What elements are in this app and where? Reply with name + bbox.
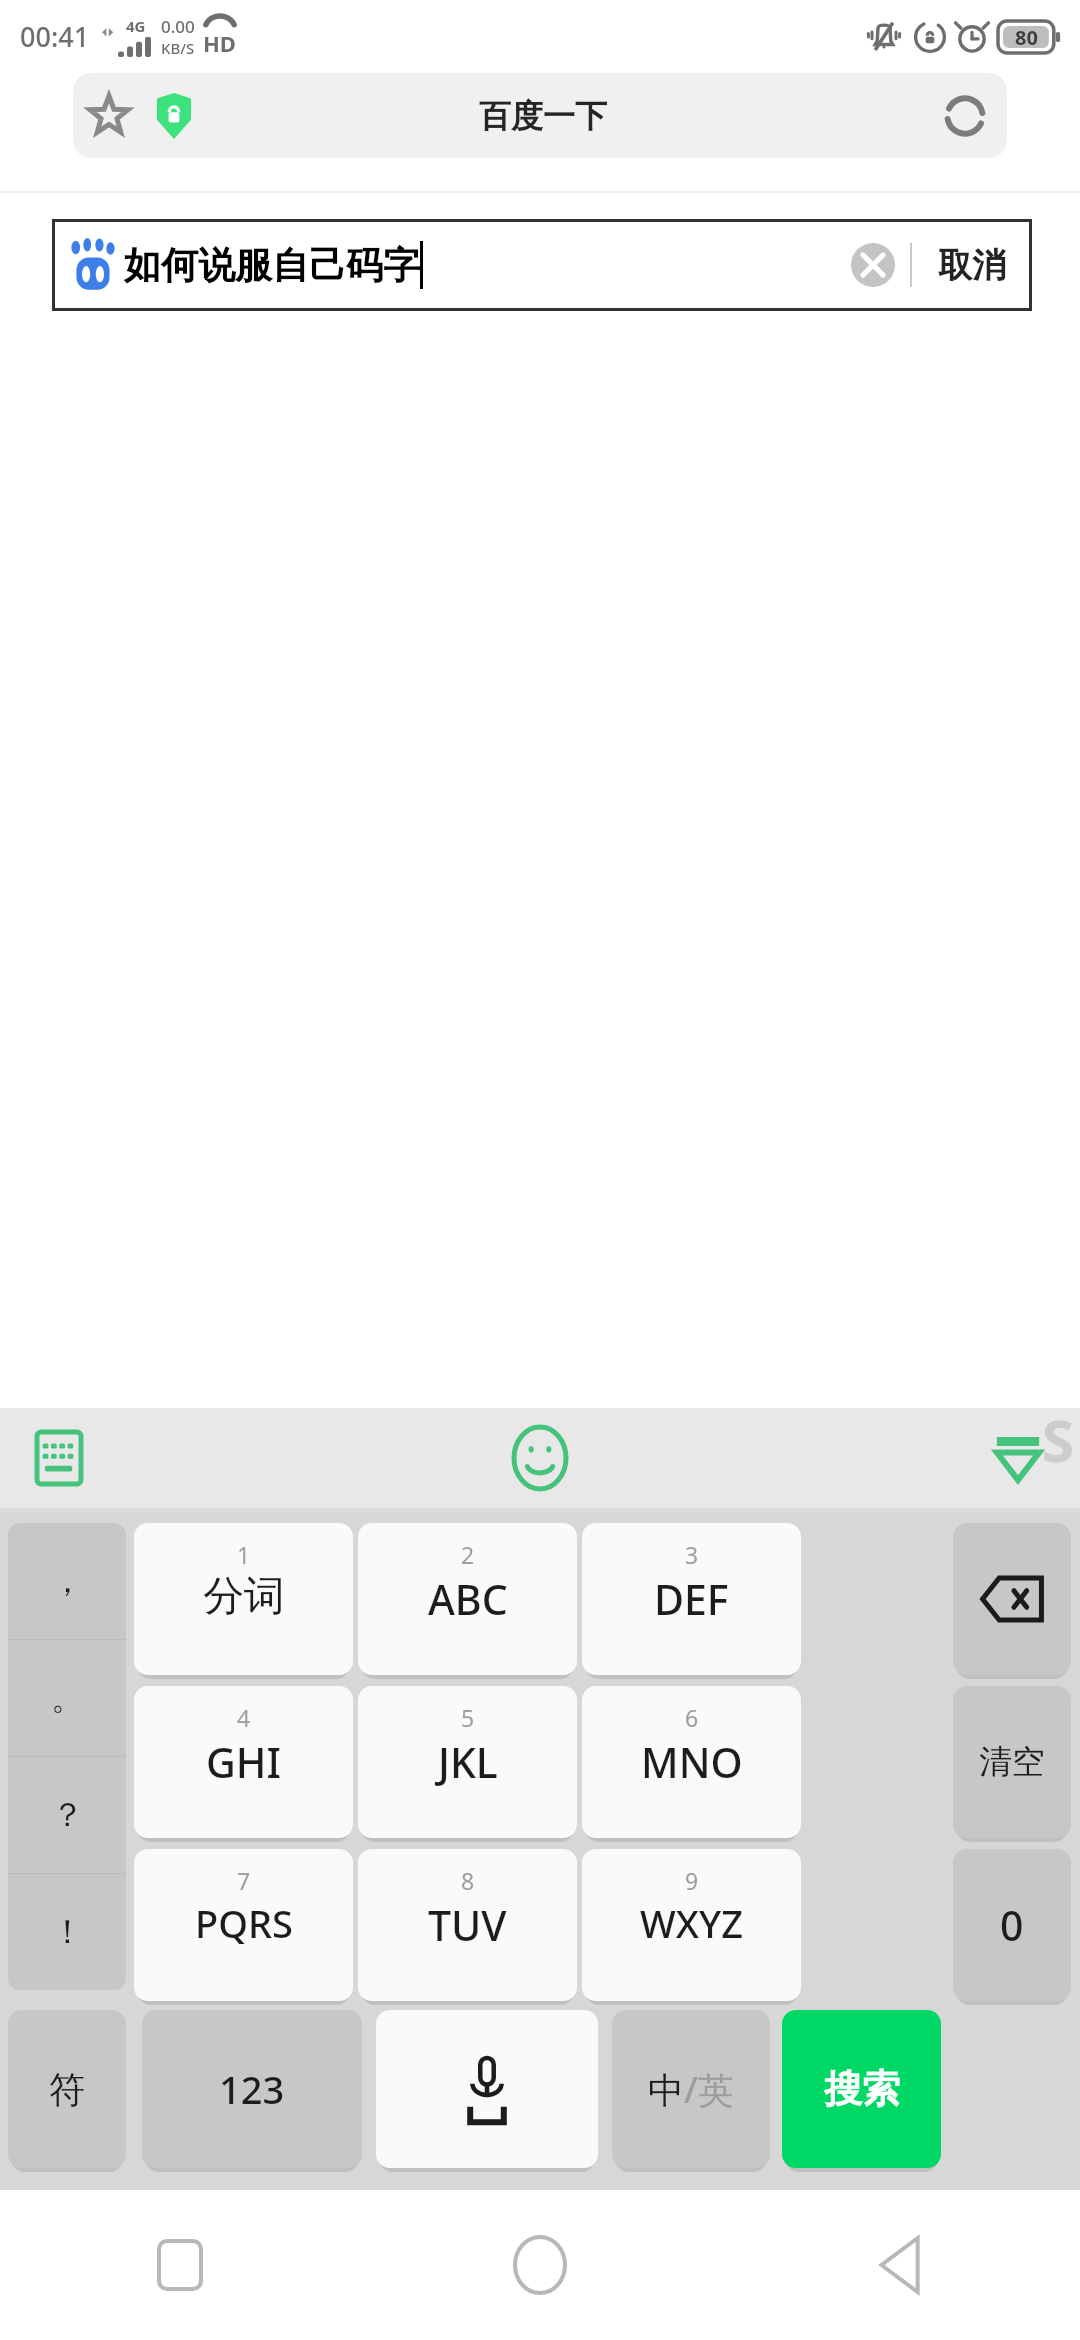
button[interactable]: Hide keyboard [982,1422,1054,1494]
staticText: JKL [438,1734,498,1790]
staticText: ？ [51,1794,84,1836]
button[interactable]: 1 [134,1523,353,1675]
staticText: MNO [641,1734,743,1790]
staticText: ABC [428,1571,508,1627]
button[interactable]: Back [720,2190,1080,2340]
button[interactable]: 清空 [953,1686,1071,1838]
button[interactable]: Home [360,2190,720,2340]
staticText: 符 [49,2067,85,2112]
staticText: 7 [237,1865,251,1896]
staticText: KB/S [161,38,195,58]
staticText: 4G [126,16,146,36]
staticText: 4 [237,1702,251,1733]
button[interactable]: Backspace [953,1523,1071,1675]
button[interactable]: 123 [142,2010,362,2168]
button[interactable]: Clear text [836,219,910,311]
button[interactable]: Voice input [376,2010,598,2168]
button[interactable]: 3 [582,1523,801,1675]
button[interactable]: Recents [0,2190,360,2340]
staticText: 0 [1000,1897,1024,1953]
staticText: HD [203,28,236,58]
button[interactable]: 8 [358,1849,577,2001]
button[interactable]: 符 [8,2010,126,2168]
button[interactable]: Refresh [923,73,1007,158]
staticText: 百度一下 [183,96,903,136]
staticText: PQRS [195,1897,293,1949]
staticText: DEF [654,1571,729,1627]
button[interactable]: 中/英 [612,2010,770,2168]
staticText: 。 [51,1677,84,1719]
button[interactable]: 取消 [912,219,1032,311]
staticText: 清空 [979,1741,1045,1783]
staticText: 8 [461,1865,475,1896]
button[interactable]: ， [8,1523,126,1639]
button[interactable]: Emoji [501,1419,579,1497]
staticText: TUV [428,1897,507,1953]
button[interactable]: 7 [134,1849,353,2001]
staticText: ！ [51,1911,84,1953]
button[interactable]: 9 [582,1849,801,2001]
button[interactable]: Switch keyboard [26,1425,92,1491]
staticText: 分词 [203,1571,285,1623]
staticText: 6 [685,1702,699,1733]
button[interactable]: ！ [8,1874,126,1990]
button[interactable]: 2 [358,1523,577,1675]
staticText: S [1042,1400,1074,1479]
button[interactable]: 0 [953,1849,1071,2001]
staticText: 搜索 [824,2065,900,2113]
staticText: ， [51,1560,84,1602]
staticText: WXYZ [640,1897,743,1949]
staticText: 0.00 [161,15,195,38]
staticText: 80 [1015,24,1038,51]
button[interactable]: ？ [8,1757,126,1873]
button[interactable]: 搜索 [782,2010,941,2168]
staticText: 00:41 [20,18,90,55]
button[interactable]: 4 [134,1686,353,1838]
staticText: 2 [461,1539,475,1570]
staticText: 中/英 [648,2065,734,2114]
button[interactable]: 。 [8,1640,126,1756]
staticText: GHI [206,1734,281,1790]
staticText: 9 [685,1865,699,1896]
staticText: 1 [237,1539,251,1570]
staticText: 3 [685,1539,699,1570]
staticText: 如何说服自己码字 [124,242,420,289]
button[interactable]: 5 [358,1686,577,1838]
button[interactable]: Bookmark [73,73,145,158]
button[interactable]: Secure site [145,73,203,158]
staticText: 取消 [938,244,1006,287]
staticText: 123 [219,2063,285,2115]
button[interactable]: 6 [582,1686,801,1838]
staticText: 5 [461,1702,475,1733]
